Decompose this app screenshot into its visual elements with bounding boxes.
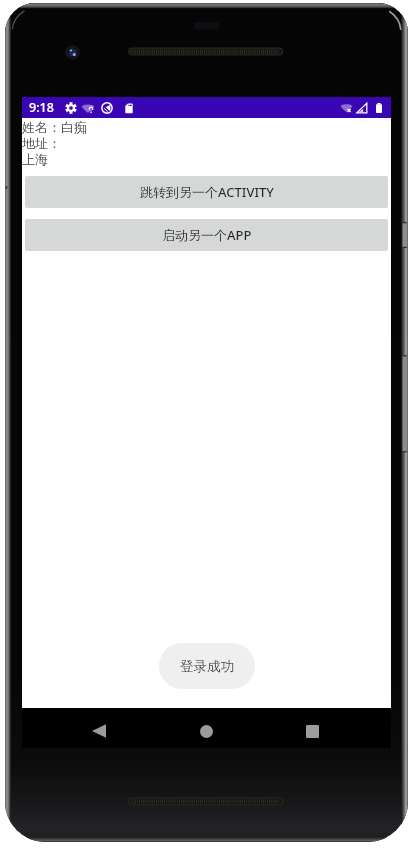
button[interactable]: 启动另一个APP bbox=[25, 219, 388, 251]
staticText: 登录成功 bbox=[180, 658, 234, 675]
button[interactable]: 跳转到另一个ACTIVITY bbox=[25, 176, 388, 208]
button[interactable]: Home bbox=[187, 712, 225, 750]
staticText: 地址： bbox=[22, 135, 61, 151]
staticText: 跳转到另一个ACTIVITY bbox=[140, 183, 274, 201]
staticText: 9:18 bbox=[29, 99, 54, 116]
staticText: 姓名：白痴 bbox=[22, 119, 87, 135]
staticText: 启动另一个APP bbox=[162, 226, 252, 244]
staticText: 上海 bbox=[22, 151, 48, 167]
button[interactable]: Recents bbox=[293, 712, 331, 750]
button[interactable]: Back bbox=[80, 712, 118, 750]
